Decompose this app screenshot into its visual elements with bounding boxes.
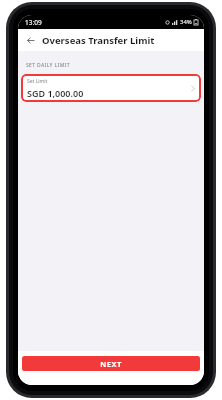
staticText: 34%	[180, 18, 192, 26]
staticText: SGD 1,000.00	[27, 87, 84, 99]
button[interactable]: Set Limit	[21, 74, 201, 102]
staticText: 13:09	[25, 18, 42, 27]
button[interactable]: NEXT	[22, 356, 200, 371]
staticText: NEXT	[100, 359, 122, 369]
button[interactable]: Back	[22, 32, 38, 48]
staticText: Set Limit	[27, 78, 48, 85]
staticText: SET DAILY LIMIT	[26, 62, 70, 69]
staticText: Overseas Transfer Limit	[42, 34, 155, 47]
